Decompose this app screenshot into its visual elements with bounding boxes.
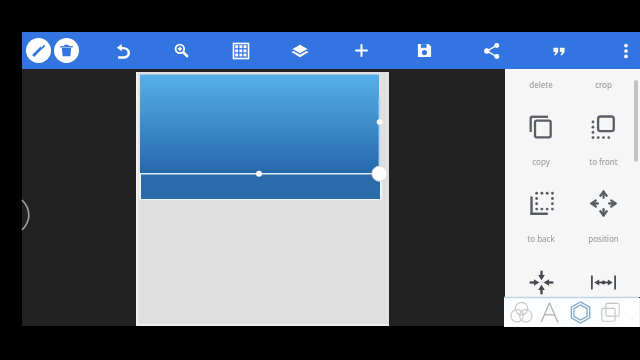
button[interactable]: Quote <box>543 35 574 66</box>
button[interactable]: copy <box>522 107 560 145</box>
button[interactable]: Delete <box>54 38 79 63</box>
button[interactable]: Layers <box>284 35 315 66</box>
staticText: crop <box>595 79 612 90</box>
button[interactable]: center <box>522 263 560 301</box>
button[interactable]: Text <box>535 298 563 326</box>
staticText: delete <box>529 79 553 90</box>
button[interactable]: Zoom <box>166 35 197 66</box>
staticText: copy <box>532 156 550 167</box>
button[interactable]: to front <box>584 107 622 145</box>
staticText: to back <box>527 233 555 244</box>
button[interactable]: position <box>584 184 622 222</box>
button[interactable]: Blend modes <box>507 298 535 326</box>
button[interactable]: More options <box>610 35 640 66</box>
button[interactable]: Save <box>409 35 440 66</box>
button[interactable]: to back <box>522 184 560 222</box>
button[interactable]: Undo <box>107 35 138 66</box>
button[interactable]: Grid <box>225 35 256 66</box>
button[interactable]: Duplicate <box>596 298 624 326</box>
button[interactable]: Shape <box>566 298 594 326</box>
button[interactable]: Add <box>346 35 377 66</box>
button[interactable]: Share <box>476 35 507 66</box>
button[interactable]: Transform <box>624 298 640 326</box>
button[interactable]: Edit <box>26 38 51 63</box>
staticText: to front <box>589 156 618 167</box>
staticText: position <box>588 233 619 244</box>
button[interactable]: size <box>584 263 622 301</box>
